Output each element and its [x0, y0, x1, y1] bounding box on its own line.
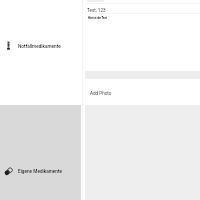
button[interactable]: Hier ist der Text	[85, 14, 200, 71]
other: Emergency medication	[4, 41, 13, 50]
staticText: Test, 123	[87, 8, 106, 13]
button[interactable]: Test, 123	[85, 4, 200, 13]
staticText: Add Photo	[90, 91, 112, 96]
button[interactable]: Emergency medication	[0, 41, 81, 53]
button[interactable]: Medikament	[85, 0, 200, 3]
other: My medication	[4, 167, 13, 176]
staticText: Notfallmedikamente	[18, 44, 61, 50]
staticText: Hier ist der Text	[88, 17, 107, 20]
button[interactable]: My medication	[0, 166, 81, 178]
button[interactable]: Add Photo	[85, 79, 200, 105]
staticText: Eigene Medikamente	[18, 169, 62, 175]
